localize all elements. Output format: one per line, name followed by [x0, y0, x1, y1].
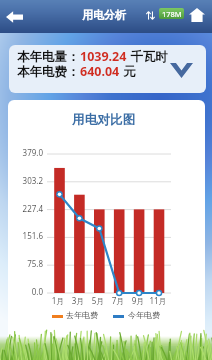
staticText: 千瓦时 — [127, 48, 168, 65]
button[interactable]: Home — [187, 5, 207, 25]
staticText: 1039.24 — [80, 48, 127, 65]
staticText: 用电分析 — [82, 8, 126, 22]
staticText: 0.0 — [8, 286, 43, 297]
staticText: 640.04 — [80, 63, 120, 80]
button[interactable]: Expand details — [167, 56, 195, 84]
staticText: 去年电费 — [66, 310, 98, 320]
staticText: 379.0 — [8, 147, 43, 158]
staticText: 5月 — [86, 295, 110, 306]
staticText: 3月 — [66, 295, 90, 306]
staticText: 用电对比图 — [72, 112, 136, 128]
staticText: 11月 — [146, 295, 170, 306]
staticText: 151.6 — [8, 230, 43, 241]
staticText: 178M — [162, 9, 182, 19]
staticText: 本年电量： — [17, 49, 80, 65]
staticText: 303.2 — [8, 175, 43, 186]
staticText: 7月 — [106, 295, 130, 306]
staticText: 227.4 — [8, 203, 43, 214]
button[interactable]: Back — [0, 0, 29, 33]
staticText: 本年电费： — [17, 64, 80, 80]
button[interactable]: 本年电量： — [9, 45, 206, 93]
staticText: 元 — [120, 63, 136, 80]
staticText: 9月 — [126, 295, 150, 306]
staticText: 今年电费 — [128, 310, 160, 320]
staticText: 75.8 — [8, 258, 43, 269]
staticText: 1月 — [46, 295, 70, 306]
